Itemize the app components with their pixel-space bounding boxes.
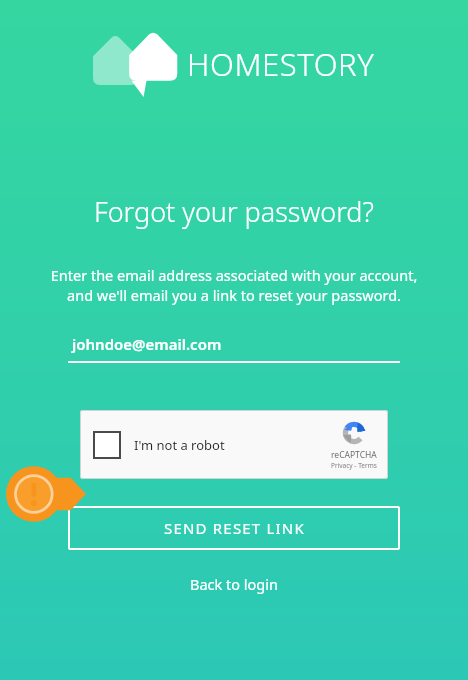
other: I'm not a robot checkbox — [93, 431, 121, 459]
staticText: I'm not a robot — [134, 436, 225, 454]
button[interactable]: Back to login — [174, 569, 294, 599]
staticText: reCAPTCHA — [331, 449, 377, 461]
button[interactable]: johndoe@email.com — [68, 334, 400, 363]
staticText: Enter the email address associated with … — [43, 265, 425, 306]
button[interactable]: SEND RESET LINK — [68, 506, 400, 550]
button[interactable]: I'm not a robot checkbox — [80, 410, 388, 479]
other: Error warning — [4, 465, 88, 523]
staticText: johndoe@email.com — [72, 334, 222, 354]
staticText: Privacy - Terms — [331, 461, 377, 470]
staticText: Back to login — [190, 574, 278, 594]
staticText: HOMESTORY — [187, 43, 375, 85]
staticText: SEND RESET LINK — [164, 518, 305, 538]
staticText: Forgot your password? — [0, 193, 468, 230]
